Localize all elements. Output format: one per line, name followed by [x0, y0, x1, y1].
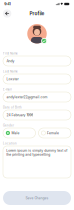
staticText: Last Name: [3, 70, 18, 73]
staticText: Andy: [6, 59, 14, 63]
button[interactable]: andylexter22@gmail.com: [3, 92, 71, 102]
staticText: E-mail: [3, 88, 12, 91]
staticText: Location: [3, 142, 17, 145]
staticText: Date of Birth: [3, 106, 22, 109]
staticText: First Name: [3, 52, 18, 55]
button[interactable]: Andy: [3, 56, 71, 66]
staticText: Gender: [3, 124, 14, 127]
button[interactable]: Back: [3, 9, 11, 18]
staticText: Profile: [29, 11, 44, 16]
staticText: andylexter22@gmail.com: [6, 95, 47, 99]
button[interactable]: Male: [3, 128, 35, 138]
button[interactable]: Lorem ipsum is simply dummy text of the …: [3, 146, 71, 178]
button[interactable]: 24 February 1996: [3, 110, 71, 120]
staticText: Loxster: [6, 77, 18, 81]
button[interactable]: Loxster: [3, 74, 71, 84]
staticText: 9:41: [4, 2, 11, 6]
button[interactable]: Female: [38, 128, 71, 138]
staticText: Male: [12, 131, 20, 135]
staticText: Female: [47, 131, 59, 135]
staticText: 24 February 1996: [6, 113, 33, 117]
button[interactable]: Save Changes: [3, 191, 71, 205]
staticText: Save Changes: [25, 196, 48, 200]
staticText: Lorem ipsum is simply dummy text of the …: [6, 149, 67, 157]
